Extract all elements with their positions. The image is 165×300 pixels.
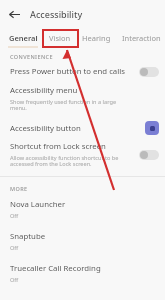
button[interactable]: Shortcut from Lock screen xyxy=(0,141,165,168)
button[interactable]: Toggle off xyxy=(139,150,159,160)
staticText: Truecaller Call Recording xyxy=(10,263,101,274)
button[interactable]: Accessibility button xyxy=(0,121,165,135)
staticText: Allow accessibility function shortcut to… xyxy=(10,154,135,168)
staticText: MORE xyxy=(10,185,28,192)
button[interactable]: Nova Launcher xyxy=(0,199,165,220)
button[interactable]: General xyxy=(8,28,39,48)
button[interactable]: Toggle off xyxy=(139,67,159,77)
staticText: General xyxy=(9,33,38,43)
button[interactable]: Accessibility button xyxy=(145,121,159,135)
button[interactable]: Snaptube xyxy=(0,231,165,252)
staticText: Off xyxy=(10,244,19,252)
button[interactable]: Back xyxy=(6,6,22,22)
staticText: Nova Launcher xyxy=(10,199,66,210)
staticText: Accessibility xyxy=(30,8,83,20)
staticText: Accessibility button xyxy=(10,123,81,134)
staticText: Vision xyxy=(49,33,71,43)
staticText: Shortcut from Lock screen xyxy=(10,141,106,152)
staticText: Interaction xyxy=(122,33,161,43)
button[interactable]: Truecaller Call Recording xyxy=(0,263,165,284)
button[interactable]: Press Power button to end calls xyxy=(0,66,165,77)
button[interactable]: Accessibility menu xyxy=(0,85,165,112)
staticText: Show frequently used function in a large… xyxy=(10,98,133,112)
button[interactable]: Hearing xyxy=(81,28,112,48)
staticText: Off xyxy=(10,276,19,284)
staticText: Hearing xyxy=(82,33,111,43)
button[interactable]: Vision xyxy=(48,28,72,48)
button[interactable]: Interaction xyxy=(121,28,162,48)
staticText: CONVENIENCE xyxy=(10,53,53,60)
staticText: Off xyxy=(10,212,19,220)
staticText: Accessibility menu xyxy=(10,85,78,96)
staticText: Press Power button to end calls xyxy=(10,66,126,77)
staticText: Snaptube xyxy=(10,231,46,242)
